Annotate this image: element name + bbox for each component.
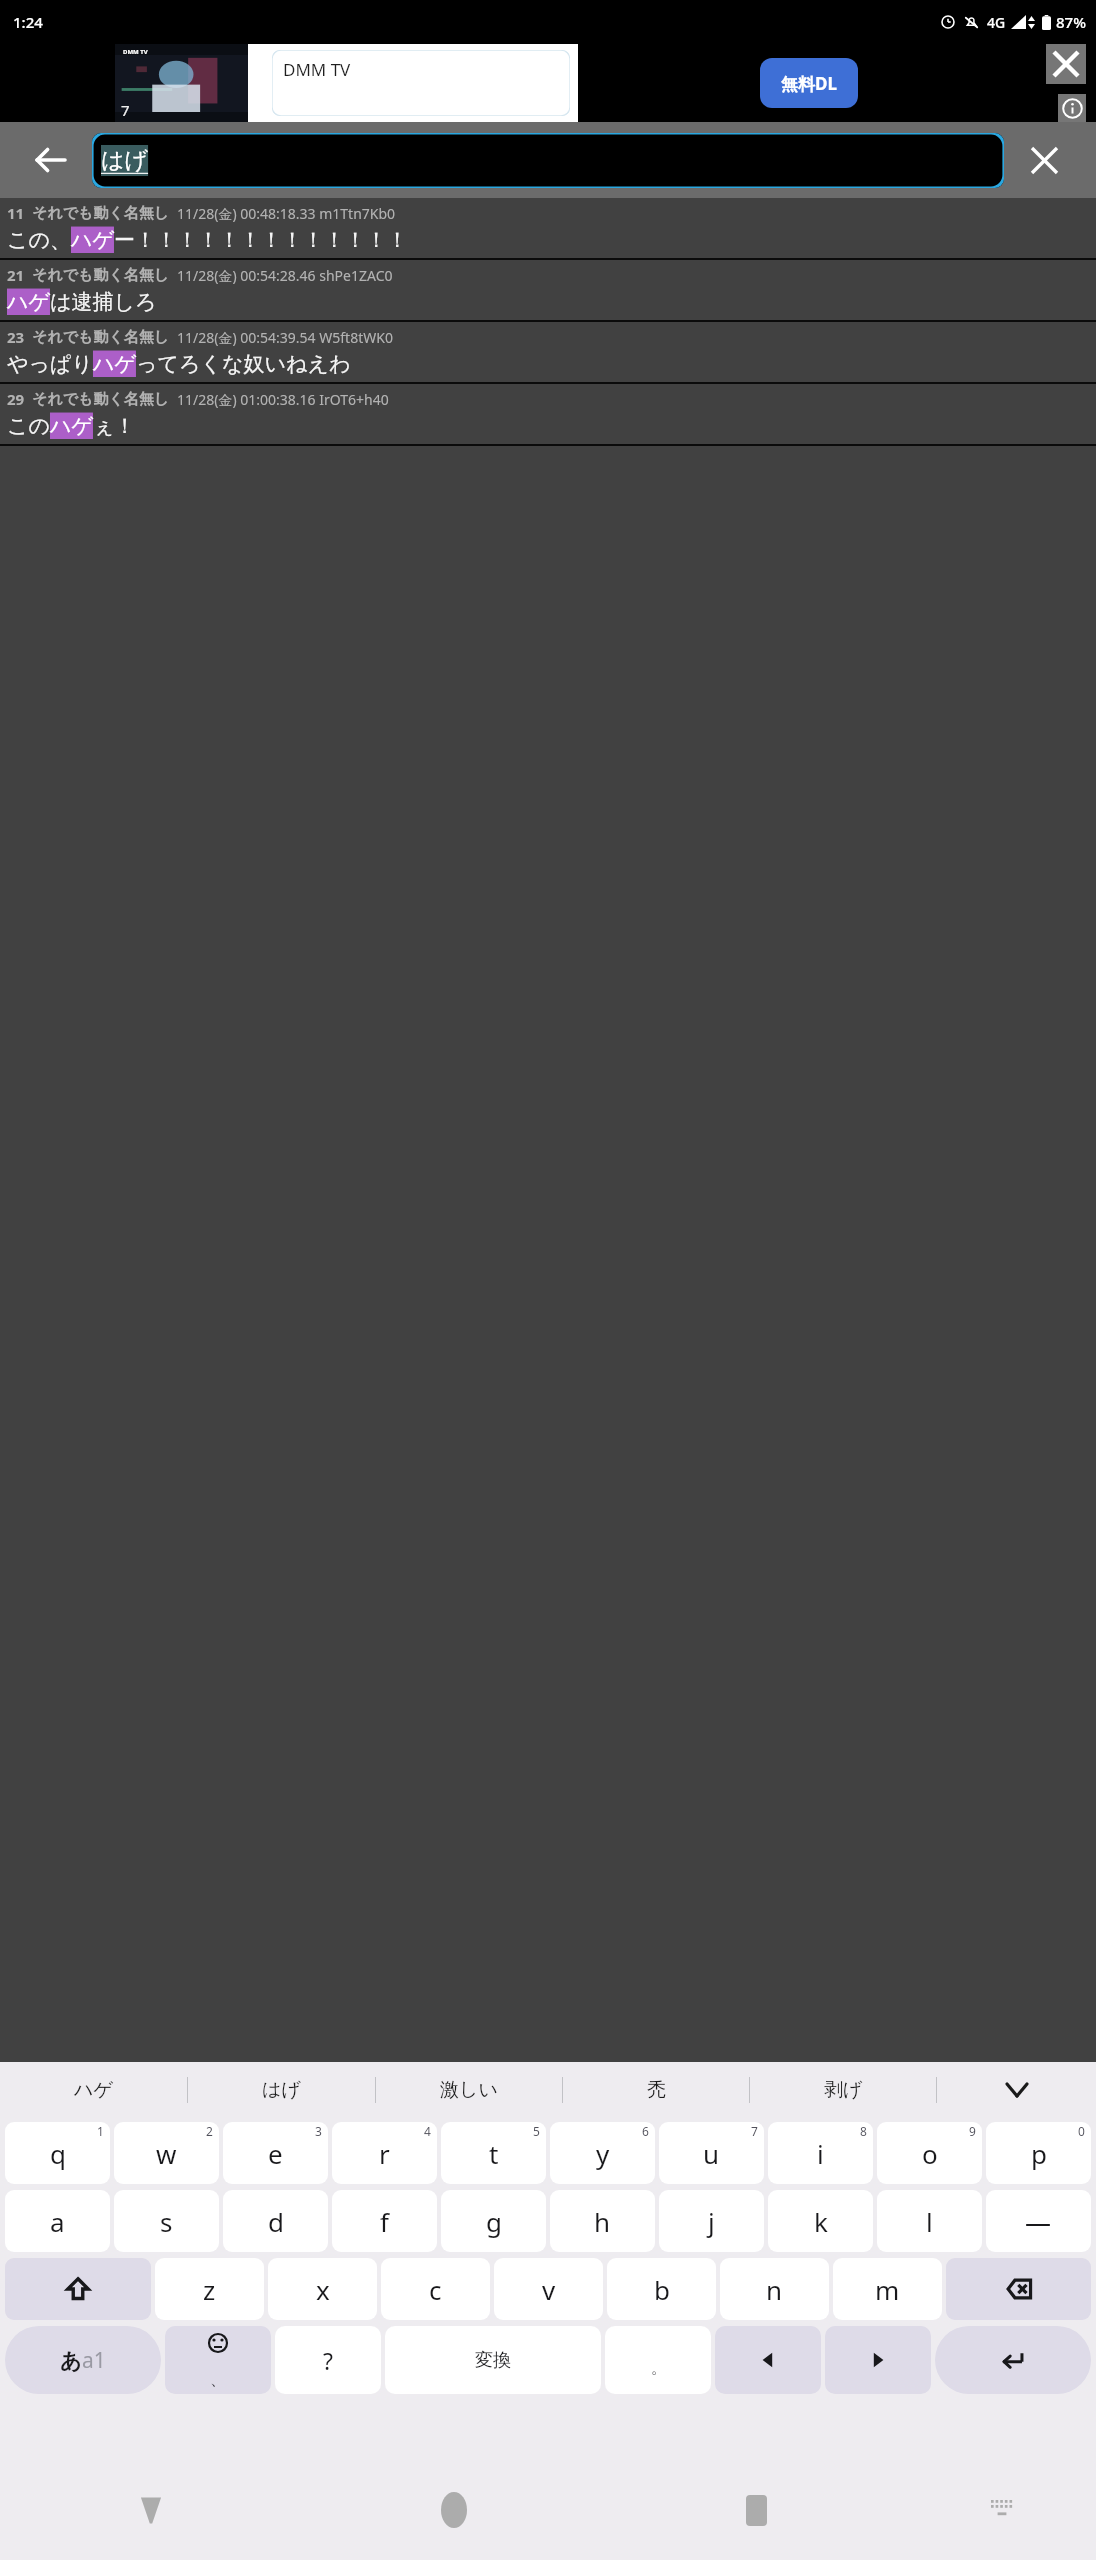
button[interactable]: Cursor left: [715, 2326, 821, 2394]
button[interactable]: b: [607, 2258, 716, 2320]
button[interactable]: i: [768, 2122, 873, 2184]
button[interactable]: h: [550, 2190, 655, 2252]
staticText: b: [654, 2272, 670, 2307]
button[interactable]: Emoji and punctuation: [165, 2326, 271, 2394]
button[interactable]: 剥げ: [750, 2062, 936, 2118]
button[interactable]: Back: [14, 124, 86, 196]
staticText: a: [50, 2204, 65, 2239]
button[interactable]: u: [659, 2122, 764, 2184]
button[interactable]: Switch keyboard: [908, 2460, 1096, 2560]
button[interactable]: d: [223, 2190, 328, 2252]
button[interactable]: l: [877, 2190, 982, 2252]
staticText: i: [817, 2136, 824, 2171]
staticText: d: [268, 2204, 284, 2239]
button[interactable]: z: [155, 2258, 264, 2320]
staticText: g: [486, 2204, 502, 2239]
button[interactable]: m: [833, 2258, 942, 2320]
button[interactable]: Enter: [935, 2326, 1091, 2394]
staticText: m: [875, 2272, 900, 2307]
button[interactable]: あ: [5, 2326, 161, 2394]
staticText: 6: [642, 2123, 649, 2139]
button[interactable]: p: [986, 2122, 1091, 2184]
button[interactable]: f: [332, 2190, 437, 2252]
staticText: 激しい: [440, 2078, 498, 2102]
button[interactable]: t: [441, 2122, 546, 2184]
staticText: それでも動く名無し: [32, 204, 170, 223]
button[interactable]: 29: [0, 384, 1096, 446]
staticText: 1: [97, 2123, 104, 2139]
button[interactable]: Shift: [5, 2258, 151, 2320]
button[interactable]: j: [659, 2190, 764, 2252]
staticText: ハゲは逮捕しろ: [7, 289, 157, 315]
button[interactable]: はげ: [92, 133, 1004, 188]
staticText: 9: [969, 2123, 976, 2139]
staticText: 剥げ: [824, 2078, 863, 2102]
button[interactable]: Clear search: [1012, 128, 1076, 192]
staticText: このハゲぇ！: [7, 413, 136, 439]
button[interactable]: —: [986, 2190, 1091, 2252]
button[interactable]: 変換: [385, 2326, 601, 2394]
button[interactable]: Backspace: [946, 2258, 1091, 2320]
button[interactable]: n: [720, 2258, 829, 2320]
staticText: 11/28(金) 00:54:39.54 W5ft8tWK0: [177, 328, 393, 347]
button[interactable]: y: [550, 2122, 655, 2184]
button[interactable]: Back: [0, 2460, 302, 2560]
button[interactable]: 21: [0, 260, 1096, 322]
button[interactable]: Cursor right: [825, 2326, 931, 2394]
staticText: 。: [651, 2359, 666, 2378]
staticText: 11/28(金) 00:54:28.46 shPe1ZAC0: [177, 266, 393, 285]
staticText: 4G: [987, 13, 1006, 32]
button[interactable]: Expand suggestions: [937, 2062, 1096, 2118]
staticText: a1: [82, 2346, 106, 2375]
staticText: z: [203, 2272, 216, 2307]
button[interactable]: r: [332, 2122, 437, 2184]
staticText: 禿: [647, 2078, 666, 2102]
button[interactable]: 23: [0, 322, 1096, 384]
button[interactable]: a: [5, 2190, 110, 2252]
staticText: s: [160, 2204, 173, 2239]
staticText: 7: [121, 100, 130, 120]
staticText: はげ: [262, 2078, 301, 2102]
button[interactable]: w: [114, 2122, 219, 2184]
staticText: o: [922, 2136, 938, 2171]
button[interactable]: Close ad: [1046, 44, 1086, 84]
button[interactable]: x: [268, 2258, 377, 2320]
button[interactable]: s: [114, 2190, 219, 2252]
button[interactable]: g: [441, 2190, 546, 2252]
staticText: c: [429, 2272, 442, 2307]
button[interactable]: ハゲ: [0, 2062, 187, 2118]
button[interactable]: o: [877, 2122, 982, 2184]
staticText: 4: [424, 2123, 431, 2139]
staticText: r: [379, 2136, 390, 2171]
button[interactable]: 禿: [563, 2062, 749, 2118]
staticText: 2: [206, 2123, 213, 2139]
staticText: t: [489, 2136, 499, 2171]
staticText: 0: [1078, 2123, 1085, 2139]
button[interactable]: ?: [275, 2326, 381, 2394]
button[interactable]: k: [768, 2190, 873, 2252]
staticText: w: [156, 2136, 177, 2171]
staticText: ハゲ: [74, 2078, 113, 2102]
button[interactable]: 無料DL: [760, 58, 858, 108]
staticText: 、: [210, 2370, 226, 2390]
button[interactable]: 。: [605, 2326, 711, 2394]
button[interactable]: c: [381, 2258, 490, 2320]
staticText: n: [766, 2272, 783, 2307]
button[interactable]: 激しい: [376, 2062, 562, 2118]
staticText: あ: [60, 2348, 82, 2374]
button[interactable]: Home: [302, 2460, 605, 2560]
staticText: 11/28(金) 00:48:18.33 m1Ttn7Kb0: [177, 204, 396, 223]
staticText: q: [50, 2136, 66, 2171]
button[interactable]: はげ: [188, 2062, 375, 2118]
staticText: l: [926, 2204, 933, 2239]
staticText: それでも動く名無し: [32, 266, 170, 285]
button[interactable]: v: [494, 2258, 603, 2320]
staticText: 7: [751, 2123, 758, 2139]
button[interactable]: Recent apps: [605, 2460, 908, 2560]
staticText: y: [596, 2136, 610, 2171]
button[interactable]: e: [223, 2122, 328, 2184]
staticText: —: [1025, 2204, 1052, 2239]
staticText: それでも動く名無し: [32, 390, 170, 409]
button[interactable]: 11: [0, 198, 1096, 260]
button[interactable]: q: [5, 2122, 110, 2184]
